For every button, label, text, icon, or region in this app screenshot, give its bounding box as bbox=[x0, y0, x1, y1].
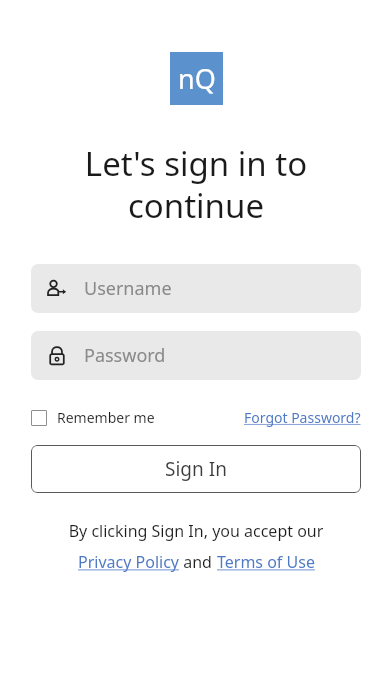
button[interactable]: Sign In bbox=[31, 445, 361, 493]
button[interactable]: Remember me bbox=[31, 408, 155, 427]
staticText: and bbox=[179, 551, 217, 573]
other: Username bbox=[46, 278, 68, 300]
staticText: nQ bbox=[178, 60, 216, 97]
button[interactable]: Username bbox=[31, 264, 361, 313]
button[interactable]: Forgot Password? bbox=[244, 408, 361, 427]
button[interactable]: Password bbox=[31, 331, 361, 380]
button[interactable]: Terms of Use bbox=[217, 551, 315, 573]
staticText: Terms of Use bbox=[217, 551, 315, 573]
staticText: Username bbox=[84, 276, 172, 301]
staticText: By clicking Sign In, you accept our bbox=[0, 520, 392, 542]
staticText: Forgot Password? bbox=[244, 408, 361, 427]
button[interactable]: Privacy Policy bbox=[78, 551, 179, 573]
staticText: Let's sign in to continue bbox=[32, 141, 360, 228]
staticText: Privacy Policy bbox=[78, 551, 179, 573]
other: Password bbox=[46, 345, 68, 367]
staticText: Remember me bbox=[57, 408, 155, 427]
staticText: Sign In bbox=[165, 456, 227, 482]
staticText: Password bbox=[84, 343, 166, 368]
